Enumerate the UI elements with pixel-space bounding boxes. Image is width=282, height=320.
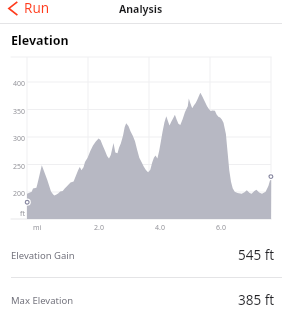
staticText: 6.0	[216, 223, 226, 233]
staticText: 300	[13, 134, 26, 144]
staticText: 2.0	[94, 223, 104, 233]
staticText: 545 ft	[238, 246, 275, 264]
staticText: 385 ft	[238, 291, 275, 309]
staticText: 400	[13, 79, 26, 89]
staticText: Elevation Gain	[11, 249, 75, 262]
button[interactable]: Elevation Gain	[0, 233, 282, 277]
button[interactable]: Max Elevation	[0, 278, 282, 320]
button[interactable]: Back to Run	[2, 0, 56, 22]
staticText: Elevation	[11, 32, 69, 49]
staticText: 4.0	[155, 223, 165, 233]
staticText: Max Elevation	[11, 294, 73, 307]
staticText: 250	[13, 162, 26, 172]
staticText: 200	[13, 189, 26, 199]
staticText: 350	[13, 107, 26, 117]
staticText: mi	[33, 223, 42, 233]
staticText: Analysis	[119, 2, 163, 16]
staticText: ft	[20, 209, 25, 219]
staticText: Run	[24, 0, 50, 17]
